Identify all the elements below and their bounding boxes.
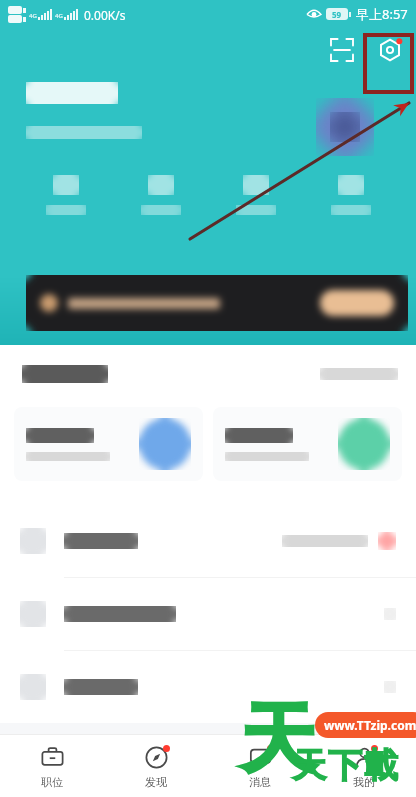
button[interactable]: 职位 (0, 735, 104, 797)
button[interactable] (18, 175, 113, 215)
button[interactable] (303, 175, 398, 215)
staticText: 4G (55, 12, 63, 20)
staticText: 59 (332, 9, 342, 20)
staticText: 0.00K/s (84, 7, 126, 23)
button[interactable] (14, 407, 203, 481)
staticText: 天 (240, 692, 316, 788)
staticText: 我的 (353, 775, 375, 789)
staticText: 下 (328, 744, 362, 787)
staticText: 天 (292, 744, 326, 787)
button[interactable] (26, 275, 408, 331)
staticText: 載 (364, 744, 398, 787)
staticText: 消息 (249, 775, 271, 789)
button[interactable] (0, 505, 416, 577)
button[interactable] (0, 651, 416, 723)
staticText: 发现 (145, 775, 167, 789)
staticText: 职位 (41, 775, 63, 789)
button[interactable]: 消息 (208, 735, 312, 797)
button[interactable] (113, 175, 208, 215)
button[interactable]: Open camera (368, 28, 412, 72)
button[interactable] (213, 407, 402, 481)
staticText: 早上8:57 (356, 5, 408, 23)
button[interactable]: 发现 (104, 735, 208, 797)
button[interactable]: 我的 (312, 735, 416, 797)
staticText: www.TTzip.com (324, 717, 416, 733)
button[interactable]: Scan QR code (320, 28, 364, 72)
staticText: 4G (29, 12, 37, 20)
button[interactable] (208, 175, 303, 215)
button[interactable] (0, 578, 416, 650)
